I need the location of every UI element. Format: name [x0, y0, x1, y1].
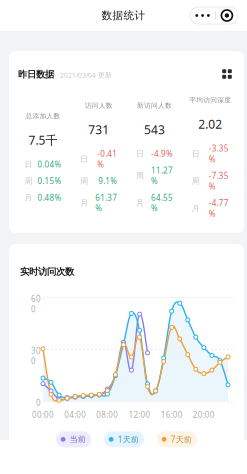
staticText: 访问人数 — [85, 101, 113, 109]
staticText: 00:00 — [32, 409, 54, 420]
staticText: -4.77% — [209, 198, 229, 219]
staticText: 0 — [36, 397, 41, 408]
staticText: 实时访问次数 — [20, 266, 74, 277]
staticText: 7天前 — [171, 434, 192, 445]
staticText: 月 — [136, 198, 144, 208]
staticText: 昨日数据 — [18, 68, 54, 80]
staticText: 731 — [88, 121, 109, 137]
staticText: 月 — [192, 203, 200, 213]
staticText: 日 — [80, 154, 88, 164]
staticText: 20:00 — [193, 409, 215, 420]
staticText: 300 — [31, 345, 41, 366]
staticText: 0.48% — [37, 192, 61, 203]
staticText: -0.41% — [97, 148, 117, 170]
staticText: 总添加人数 — [25, 112, 60, 120]
staticText: 0.04% — [37, 159, 61, 170]
staticText: 2021/03/04 更新 — [60, 71, 112, 79]
staticText: 日 — [136, 149, 144, 159]
staticText: -3.35% — [209, 143, 229, 164]
staticText: 周 — [24, 176, 32, 186]
button[interactable]: 7天前 — [157, 431, 197, 447]
staticText: 月 — [24, 193, 32, 202]
staticText: 16:00 — [161, 409, 183, 420]
staticText: 月 — [80, 198, 88, 208]
staticText: -4.9% — [151, 148, 173, 159]
staticText: 11.27% — [151, 165, 173, 186]
staticText: 0.15% — [37, 176, 61, 186]
staticText: 1天前 — [118, 434, 139, 445]
staticText: 04:00 — [64, 409, 86, 420]
staticText: 新访问人数 — [137, 101, 172, 109]
button[interactable]: 1天前 — [104, 431, 144, 447]
staticText: 日 — [192, 149, 200, 159]
staticText: 当前 — [70, 434, 86, 444]
staticText: 7.5千 — [28, 132, 57, 148]
button[interactable]: Switch layout — [221, 68, 233, 80]
staticText: 周 — [192, 176, 200, 186]
staticText: 543 — [144, 121, 165, 137]
staticText: 日 — [24, 159, 32, 169]
staticText: 9.1% — [98, 176, 117, 186]
staticText: 12:00 — [128, 409, 150, 420]
staticText: 61.37% — [95, 192, 117, 213]
staticText: 08:00 — [96, 409, 118, 420]
staticText: 600 — [31, 293, 41, 314]
staticText: 2.02 — [198, 116, 222, 132]
button[interactable]: More options — [190, 7, 238, 24]
staticText: 周 — [136, 171, 144, 181]
staticText: 平均访问深度 — [189, 96, 231, 104]
staticText: 数据统计 — [101, 9, 145, 22]
staticText: -7.35% — [209, 170, 229, 192]
button[interactable]: 当前 — [56, 431, 91, 447]
staticText: 64.55% — [151, 192, 173, 213]
staticText: 周 — [80, 176, 88, 186]
